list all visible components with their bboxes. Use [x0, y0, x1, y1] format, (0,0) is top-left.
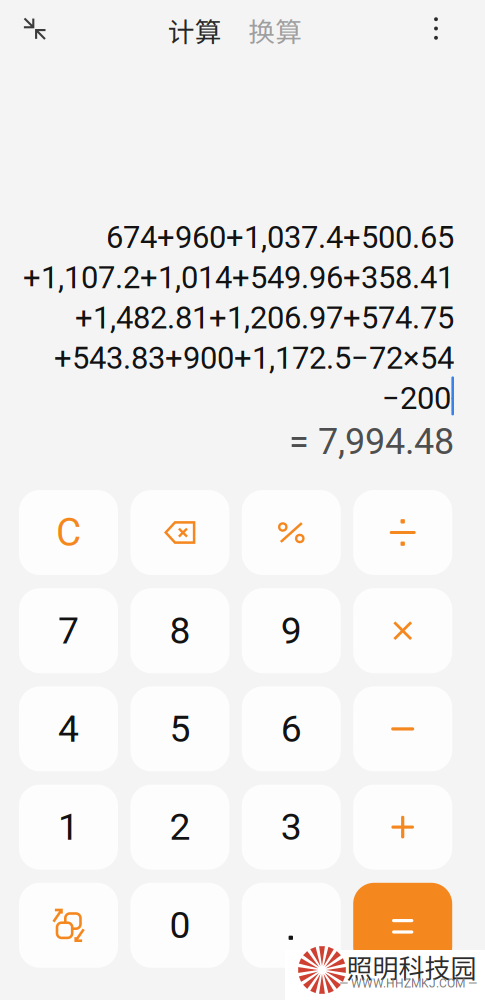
button[interactable]: 7: [19, 588, 118, 673]
staticText: 6: [281, 707, 302, 751]
staticText: 2: [169, 805, 190, 849]
button[interactable]: 9: [242, 588, 341, 673]
staticText: 1: [58, 805, 79, 849]
staticText: 照明科技园: [346, 948, 476, 986]
staticText: −200: [382, 380, 451, 416]
button[interactable]: Backspace: [130, 490, 229, 575]
staticText: +1,107.2+1,014+549.96+358.41: [23, 259, 454, 296]
staticText: 8: [169, 609, 190, 652]
button[interactable]: Clear: [19, 490, 118, 575]
staticText: 9: [281, 609, 302, 652]
button[interactable]: 5: [130, 686, 229, 771]
staticText: 0: [169, 903, 190, 947]
staticText: 7: [58, 609, 79, 652]
button[interactable]: Minus: [353, 686, 452, 771]
button[interactable]: 0: [130, 883, 229, 968]
staticText: 计算: [168, 11, 222, 49]
staticText: 674+960+1,037.4+500.65: [106, 219, 454, 255]
button[interactable]: Percent: [242, 490, 341, 575]
staticText: +543.83+900+1,172.5−72×54: [54, 340, 454, 376]
staticText: 4: [58, 707, 79, 751]
button[interactable]: 4: [19, 686, 118, 771]
button[interactable]: 计算: [168, 8, 222, 52]
staticText: 3: [281, 805, 302, 849]
button[interactable]: More options: [411, 4, 461, 52]
staticText: C: [56, 510, 81, 555]
button[interactable]: Plus: [353, 785, 452, 870]
button[interactable]: 2: [130, 785, 229, 870]
button[interactable]: Multiply: [353, 588, 452, 673]
button[interactable]: Unit conversion: [19, 883, 118, 968]
button[interactable]: 6: [242, 686, 341, 771]
button[interactable]: 1: [19, 785, 118, 870]
button[interactable]: Collapse: [7, 4, 63, 52]
staticText: = 7,994.48: [289, 420, 454, 463]
button[interactable]: Divide: [353, 490, 452, 575]
button[interactable]: Decimal point: [242, 883, 341, 968]
button[interactable]: 换算: [248, 8, 302, 52]
button[interactable]: 3: [242, 785, 341, 870]
button[interactable]: 8: [130, 588, 229, 673]
staticText: — WWW.HHZMKJ.COM —: [339, 976, 477, 991]
staticText: 换算: [248, 11, 302, 49]
button[interactable]: Equals: [353, 883, 452, 968]
staticText: +1,482.81+1,206.97+574.75: [75, 300, 454, 336]
staticText: 5: [169, 707, 190, 751]
